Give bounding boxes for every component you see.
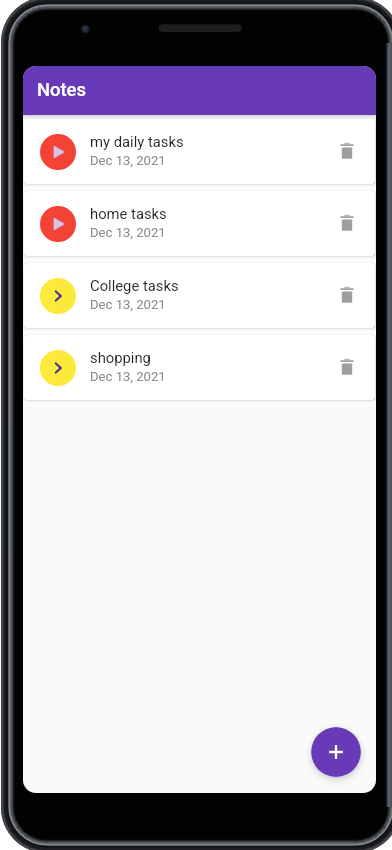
staticText: shopping [90,349,151,366]
button[interactable]: shopping [24,335,375,400]
staticText: Dec 13, 2021 [90,153,166,168]
button[interactable]: Delete note [327,132,367,172]
button[interactable]: Delete note [327,276,367,316]
staticText: Notes [37,79,86,101]
button[interactable]: Add note [311,727,361,777]
button[interactable]: Notes [23,66,376,115]
staticText: my daily tasks [90,133,184,150]
button[interactable]: Delete note [327,348,367,388]
staticText: home tasks [90,205,167,222]
button[interactable]: Delete note [327,204,367,244]
staticText: Dec 13, 2021 [90,225,166,240]
button[interactable]: my daily tasks [24,119,375,184]
button[interactable]: home tasks [24,191,375,256]
staticText: Dec 13, 2021 [90,297,166,312]
button[interactable]: College tasks [24,263,375,328]
staticText: Dec 13, 2021 [90,369,166,384]
staticText: College tasks [90,277,179,294]
